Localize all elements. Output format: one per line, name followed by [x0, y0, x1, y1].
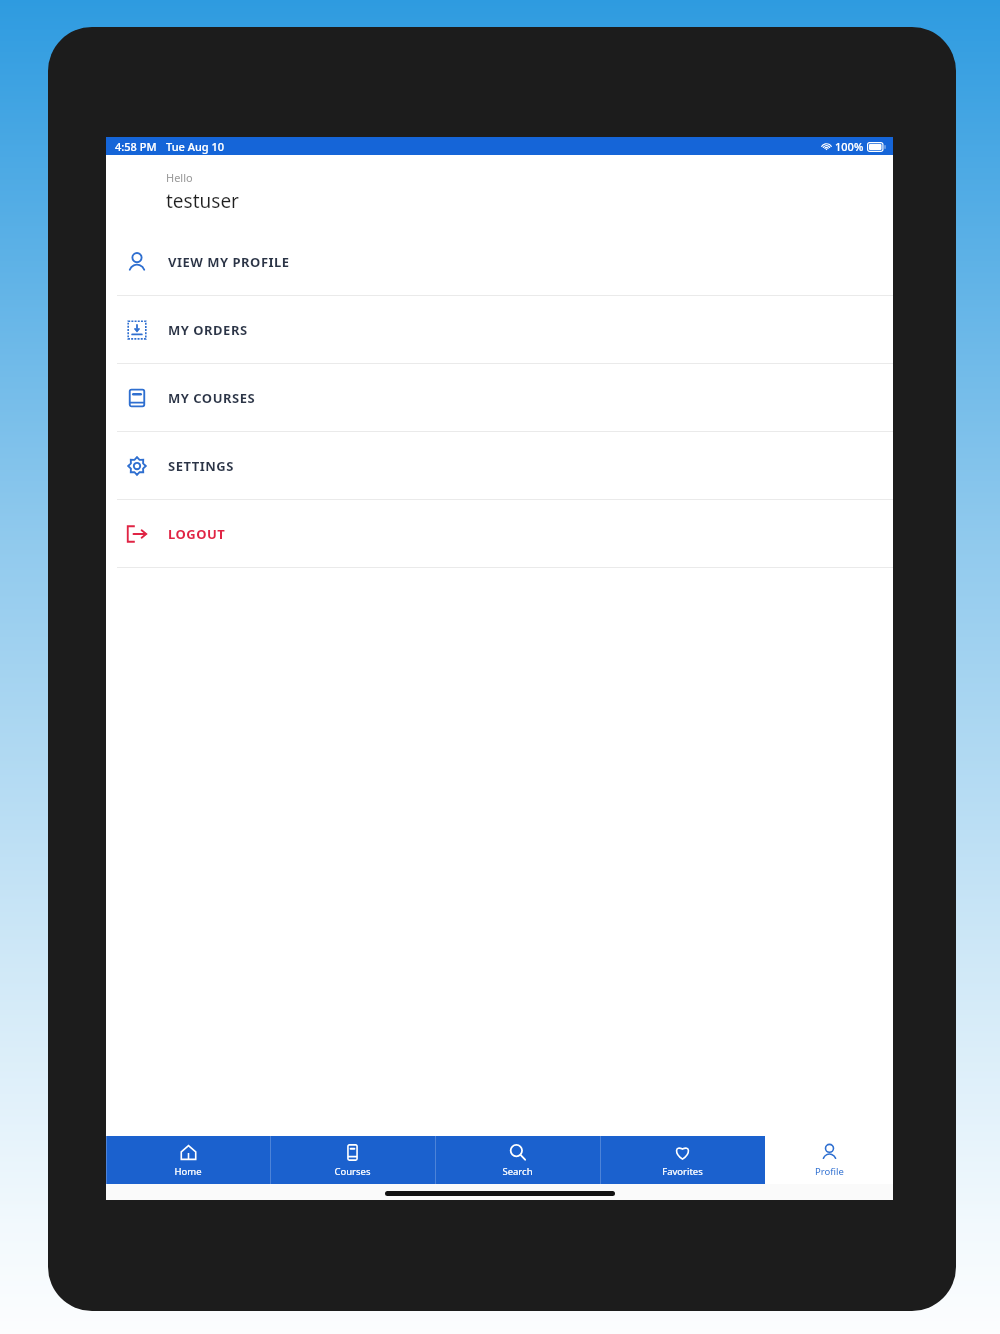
staticText: 100%: [835, 139, 864, 154]
staticText: LOGOUT: [168, 525, 226, 543]
staticText: MY COURSES: [168, 389, 256, 407]
staticText: Courses: [334, 1165, 371, 1178]
staticText: Tue Aug 10: [166, 139, 225, 154]
button[interactable]: Courses: [270, 1136, 435, 1184]
staticText: VIEW MY PROFILE: [168, 253, 290, 271]
staticText: Home: [174, 1165, 202, 1178]
button[interactable]: MY COURSES: [106, 364, 893, 431]
button[interactable]: SETTINGS: [106, 432, 893, 499]
staticText: Hello: [166, 170, 193, 185]
button[interactable]: Home: [106, 1136, 270, 1184]
staticText: MY ORDERS: [168, 321, 248, 339]
staticText: testuser: [166, 188, 239, 214]
staticText: 4:58 PM: [115, 139, 157, 154]
staticText: Favorites: [662, 1165, 703, 1178]
button[interactable]: Favorites: [600, 1136, 765, 1184]
staticText: Search: [502, 1165, 533, 1178]
button[interactable]: Search: [435, 1136, 600, 1184]
staticText: SETTINGS: [168, 457, 234, 475]
staticText: Profile: [815, 1165, 844, 1178]
button[interactable]: VIEW MY PROFILE: [106, 228, 893, 295]
button[interactable]: Profile: [765, 1136, 893, 1184]
button[interactable]: LOGOUT: [106, 500, 893, 567]
button[interactable]: MY ORDERS: [106, 296, 893, 363]
